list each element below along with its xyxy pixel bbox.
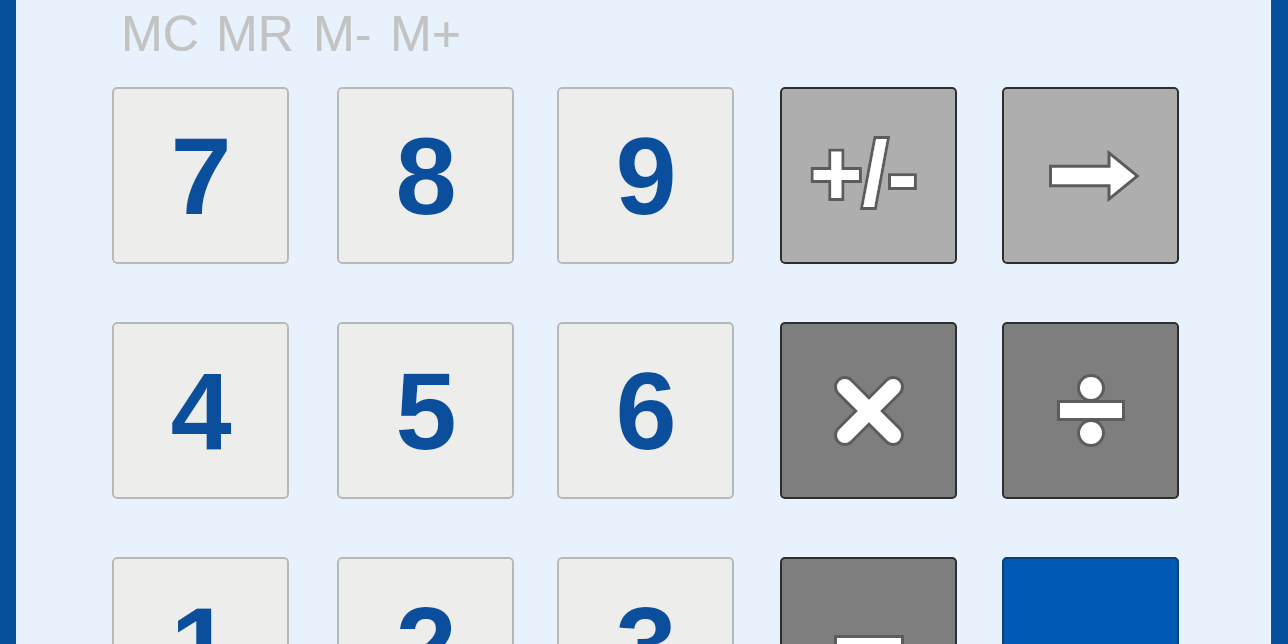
button[interactable]: 8 — [337, 87, 514, 264]
staticText: 4 — [170, 349, 232, 472]
staticText: 2 — [395, 584, 457, 644]
staticText: 1 — [170, 584, 232, 644]
staticText: M- — [313, 6, 372, 62]
staticText: 5 — [395, 349, 457, 472]
staticText: MR — [216, 6, 294, 62]
button[interactable]: 9 — [557, 87, 734, 264]
button[interactable]: Multiply — [780, 322, 957, 499]
staticText: 8 — [395, 114, 457, 237]
staticText: 9 — [615, 114, 677, 237]
button[interactable]: M- — [313, 6, 390, 62]
button[interactable]: 5 — [337, 322, 514, 499]
button[interactable]: 6 — [557, 322, 734, 499]
button[interactable]: Equals — [1002, 557, 1179, 644]
button[interactable]: Plus minus sign — [780, 87, 957, 264]
staticText: M+ — [390, 6, 461, 62]
button[interactable]: 3 — [557, 557, 734, 644]
button[interactable]: 4 — [112, 322, 289, 499]
button[interactable]: 1 — [112, 557, 289, 644]
button[interactable]: Minus — [780, 557, 957, 644]
button[interactable]: MR — [216, 6, 313, 62]
staticText: 6 — [615, 349, 677, 472]
staticText: 7 — [170, 114, 232, 237]
button[interactable]: MC — [121, 6, 216, 62]
staticText: +/- — [810, 124, 918, 225]
button[interactable]: 7 — [112, 87, 289, 264]
button[interactable]: M+ — [390, 6, 461, 62]
staticText: 3 — [615, 584, 677, 644]
button[interactable]: Divide — [1002, 322, 1179, 499]
staticText: +/- — [810, 124, 918, 225]
staticText: MC — [121, 6, 199, 62]
button[interactable]: Backspace — [1002, 87, 1179, 264]
button[interactable]: 2 — [337, 557, 514, 644]
